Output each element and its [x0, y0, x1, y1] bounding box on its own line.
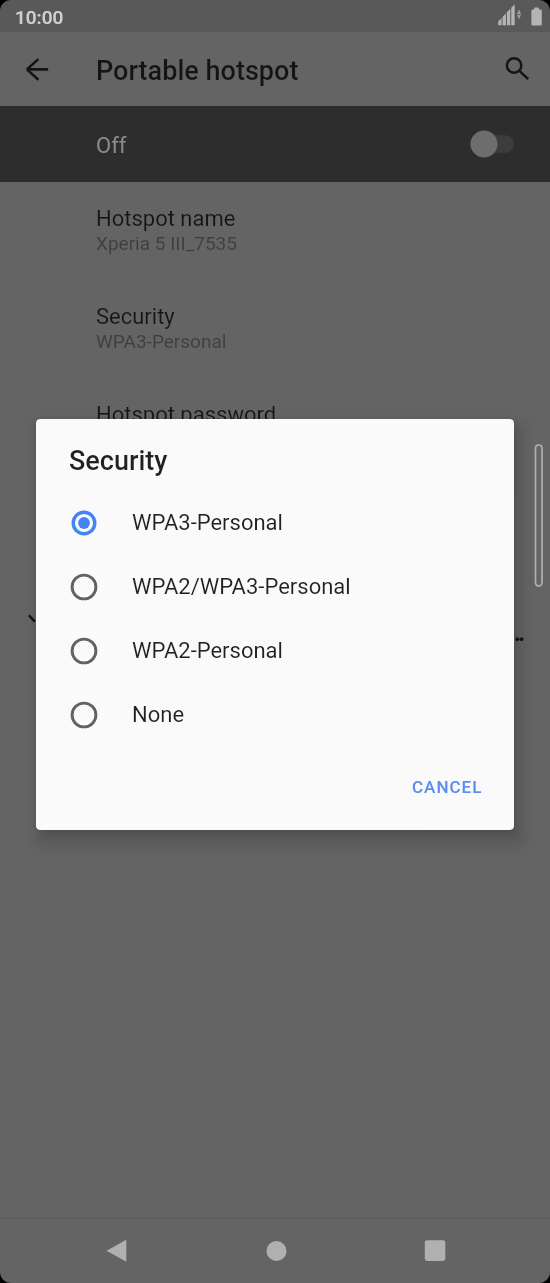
button[interactable]: Security	[0, 281, 550, 379]
button[interactable]: Search	[490, 45, 538, 93]
button[interactable]: None	[36, 683, 514, 747]
button[interactable]: Home	[246, 1219, 306, 1279]
button[interactable]: Hotspot name	[0, 183, 550, 281]
button[interactable]: Navigate up	[13, 45, 61, 93]
staticText: Security	[96, 304, 175, 330]
staticText: 10:00	[15, 6, 64, 28]
staticText: CANCEL	[412, 777, 483, 797]
button[interactable]: Back	[86, 1219, 146, 1279]
button[interactable]: Off	[0, 106, 550, 182]
button[interactable]: CANCEL	[403, 769, 492, 805]
staticText: WPA2-Personal	[132, 638, 283, 664]
staticText: Hotspot password	[96, 402, 277, 428]
staticText: WPA3-Personal	[132, 510, 283, 536]
staticText: WPA3-Personal	[96, 330, 227, 352]
staticText: WPA2/WPA3-Personal	[132, 574, 351, 600]
staticText: None	[132, 702, 185, 728]
staticText: Portable hotspot	[96, 55, 299, 87]
button[interactable]: WPA2-Personal	[36, 619, 514, 683]
button[interactable]: Hotspot password	[0, 379, 550, 477]
button[interactable]: Recent apps	[405, 1219, 465, 1279]
staticText: Security	[69, 445, 168, 477]
button[interactable]: WPA3-Personal	[36, 491, 514, 555]
staticText: Off	[96, 133, 127, 159]
button[interactable]: Use portable hotspot	[454, 120, 530, 168]
staticText: Xperia 5 III_7535	[96, 232, 237, 254]
staticText: Hotspot name	[96, 206, 236, 232]
button[interactable]: WPA2/WPA3-Personal	[36, 555, 514, 619]
